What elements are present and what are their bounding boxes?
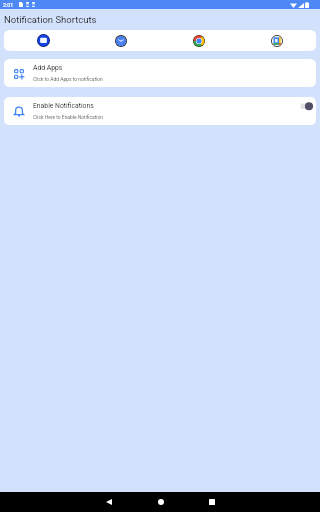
button[interactable]: Home <box>150 492 171 512</box>
staticText: Enable Notifications <box>33 102 94 110</box>
button[interactable]: Photos app <box>238 30 316 51</box>
button[interactable]: Chrome app <box>160 30 238 51</box>
staticText: Add Apps <box>33 64 63 72</box>
staticText: Click Here to Enable Notification <box>33 114 104 120</box>
button[interactable]: Email app <box>4 30 82 51</box>
button[interactable]: Enable Notifications <box>4 97 316 125</box>
button[interactable]: Browser app <box>82 30 160 51</box>
staticText: Click to Add Apps to notification <box>33 76 103 82</box>
staticText: 2:01 <box>3 2 14 8</box>
button[interactable]: Toggle notifications <box>299 97 315 125</box>
button[interactable]: Add Apps <box>4 59 316 87</box>
staticText: Notification Shortcuts <box>4 14 97 25</box>
button[interactable]: Recent apps <box>201 492 222 512</box>
button[interactable]: Back <box>98 492 119 512</box>
